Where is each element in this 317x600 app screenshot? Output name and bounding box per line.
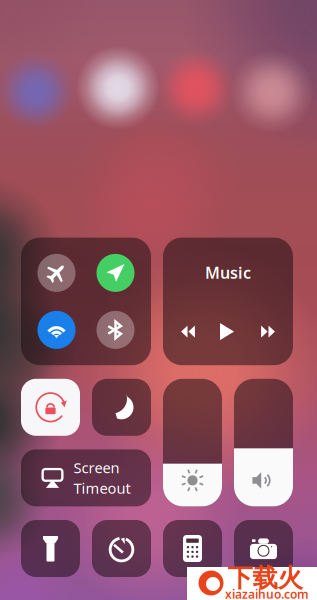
- button[interactable]: Brightness: [163, 379, 222, 506]
- button[interactable]: Do Not Disturb: [92, 379, 151, 436]
- button[interactable]: Volume: [234, 379, 293, 506]
- button[interactable]: Airplane Mode: [37, 254, 75, 292]
- button[interactable]: Screen: [21, 449, 151, 506]
- staticText: xiazaihuo.com: [225, 586, 309, 600]
- button[interactable]: Music: [163, 238, 293, 365]
- staticText: 下载火: [227, 562, 302, 593]
- button[interactable]: Flashlight: [21, 520, 80, 577]
- button[interactable]: Calculator: [163, 520, 222, 577]
- button[interactable]: Bluetooth: [96, 311, 134, 349]
- staticText: Timeout: [73, 478, 130, 498]
- button[interactable]: Camera: [234, 520, 293, 577]
- button[interactable]: Timer: [92, 520, 151, 577]
- button[interactable]: Location: [96, 254, 134, 292]
- staticText: Music: [205, 262, 251, 283]
- button[interactable]: Wi-Fi: [37, 311, 75, 349]
- staticText: Screen: [73, 458, 119, 477]
- button[interactable]: Rotation Lock: [21, 379, 80, 436]
